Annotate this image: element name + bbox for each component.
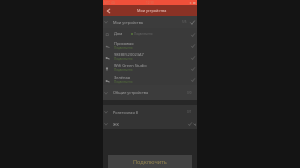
- button[interactable]: Connected: [188, 51, 197, 62]
- staticText: Подключено: [114, 46, 133, 50]
- staticText: Мои устройства: [137, 8, 167, 13]
- button[interactable]: Общие устройства: [103, 85, 197, 100]
- staticText: 5/5: [182, 20, 187, 24]
- button[interactable]: Connected: [188, 39, 197, 51]
- staticText: Розеточная 8: [113, 110, 138, 115]
- staticText: Подключено: [114, 57, 133, 61]
- staticText: Дом: [114, 31, 123, 36]
- staticText: Подключено: [114, 68, 133, 72]
- staticText: 0/1: [187, 110, 192, 114]
- staticText: ЖК: [113, 122, 119, 127]
- button[interactable]: Back: [103, 5, 113, 16]
- staticText: Подключено: [114, 80, 133, 84]
- button[interactable]: Прихожая: [103, 39, 197, 51]
- button[interactable]: ЖК: [103, 119, 197, 129]
- button[interactable]: 98E8E520023A7: [103, 51, 197, 62]
- button[interactable]: Edit: [188, 16, 197, 28]
- staticText: Wifi Green Studio: [114, 63, 147, 68]
- button[interactable]: Зелёная: [103, 73, 197, 85]
- button[interactable]: Подключить: [108, 155, 192, 168]
- button[interactable]: Мои устройства: [103, 16, 197, 28]
- staticText: Зелёная: [114, 75, 131, 80]
- button[interactable]: Connected: [188, 73, 197, 85]
- staticText: 0/0: [187, 91, 192, 95]
- staticText: Подключить: [133, 158, 167, 166]
- button[interactable]: Розеточная 8: [103, 105, 197, 119]
- button[interactable]: Дом: [103, 28, 197, 39]
- staticText: Подключено: [134, 32, 153, 36]
- button[interactable]: Connected: [188, 28, 197, 39]
- staticText: МТС 4G: [104, 1, 115, 5]
- staticText: Мои устройства: [113, 20, 144, 25]
- button[interactable]: Wifi Green Studio: [103, 62, 197, 73]
- staticText: 98E8E520023A7: [114, 52, 144, 57]
- staticText: Прихожая: [114, 41, 134, 46]
- staticText: 12:30: [146, 1, 154, 5]
- button[interactable]: Connected: [188, 62, 197, 73]
- staticText: Общие устройства: [113, 90, 149, 95]
